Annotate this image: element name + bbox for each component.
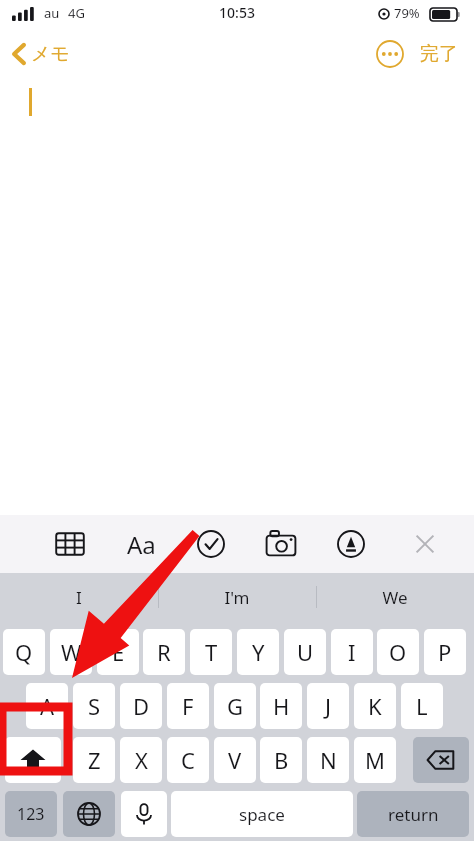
staticText: S — [88, 691, 101, 721]
staticText: I — [0, 586, 158, 609]
button[interactable]: G — [214, 683, 256, 729]
staticText: Q — [15, 637, 33, 667]
staticText: T — [205, 637, 218, 667]
staticText: P — [438, 637, 452, 667]
staticText: G — [227, 691, 244, 721]
staticText: X — [135, 745, 148, 775]
staticText: C — [181, 745, 195, 775]
button[interactable]: Shift — [5, 737, 61, 783]
staticText: 10:53 — [0, 3, 474, 22]
button[interactable]: X — [120, 737, 162, 783]
staticText: B — [274, 745, 289, 775]
staticText: U — [297, 637, 314, 667]
staticText: O — [389, 637, 407, 667]
button[interactable]: Backspace — [413, 737, 469, 783]
staticText: I'm — [158, 586, 316, 609]
button[interactable]: space — [171, 791, 353, 837]
staticText: space — [239, 803, 285, 826]
button[interactable]: 123 — [5, 791, 57, 837]
button[interactable]: C — [167, 737, 209, 783]
button[interactable]: K — [354, 683, 396, 729]
button[interactable]: Change keyboard language — [63, 791, 115, 837]
staticText: K — [368, 691, 382, 721]
button[interactable]: P — [424, 629, 466, 675]
staticText: Y — [252, 637, 265, 667]
staticText: We — [316, 586, 474, 609]
staticText: メモ — [31, 42, 70, 66]
button[interactable]: Checklist — [190, 515, 232, 573]
button[interactable]: W — [50, 629, 92, 675]
button[interactable]: B — [260, 737, 302, 783]
staticText: H — [273, 691, 290, 721]
button[interactable]: Q — [3, 629, 45, 675]
staticText: au — [44, 4, 60, 22]
button[interactable]: R — [143, 629, 185, 675]
staticText: 完了 — [420, 42, 458, 66]
button[interactable]: I — [331, 629, 373, 675]
button[interactable]: M — [354, 737, 396, 783]
button[interactable]: T — [190, 629, 232, 675]
staticText: W — [61, 637, 82, 667]
button[interactable]: E — [97, 629, 139, 675]
button[interactable]: O — [377, 629, 419, 675]
button[interactable]: H — [260, 683, 302, 729]
button[interactable]: Z — [73, 737, 115, 783]
staticText: L — [416, 691, 428, 721]
staticText: 123 — [17, 803, 45, 825]
staticText: Z — [88, 745, 101, 775]
staticText: I — [348, 637, 356, 667]
button[interactable]: More options — [372, 36, 408, 72]
button[interactable]: Aa — [120, 515, 162, 573]
button[interactable]: return — [357, 791, 469, 837]
staticText: R — [157, 637, 171, 667]
button[interactable]: A — [26, 683, 68, 729]
staticText: J — [325, 691, 332, 721]
button[interactable]: Y — [237, 629, 279, 675]
staticText: E — [112, 637, 125, 667]
button[interactable]: Format text — [119, 515, 161, 573]
staticText: F — [182, 691, 194, 721]
button[interactable]: Markup — [330, 515, 372, 573]
button[interactable]: Dictation — [121, 791, 167, 837]
staticText: V — [228, 745, 242, 775]
button[interactable]: D — [120, 683, 162, 729]
staticText: N — [320, 745, 337, 775]
button[interactable]: J — [307, 683, 349, 729]
staticText: 79% — [394, 4, 420, 22]
button[interactable]: V — [214, 737, 256, 783]
staticText: D — [133, 691, 150, 721]
button[interactable]: 完了 — [414, 36, 464, 72]
button[interactable]: メモ — [8, 36, 74, 72]
staticText: 4G — [68, 4, 85, 22]
button[interactable]: L — [401, 683, 443, 729]
button[interactable]: F — [167, 683, 209, 729]
button[interactable]: S — [73, 683, 115, 729]
staticText: Aa — [127, 528, 156, 561]
button[interactable]: Close keyboard — [404, 515, 446, 573]
button[interactable]: N — [307, 737, 349, 783]
button[interactable]: Camera — [260, 515, 302, 573]
staticText: return — [388, 803, 439, 826]
staticText: A — [40, 691, 55, 721]
staticText: M — [365, 745, 385, 775]
button[interactable]: U — [284, 629, 326, 675]
button[interactable]: Table — [49, 515, 91, 573]
